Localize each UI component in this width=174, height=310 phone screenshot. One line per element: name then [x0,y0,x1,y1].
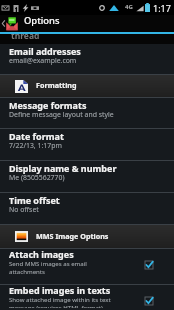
staticText: Email addresses [9,45,81,57]
staticText: Embed images in texts [9,284,111,296]
staticText: Display name & number [9,162,117,174]
staticText: 1:17 [153,2,171,14]
staticText: Define message layout and style [9,110,114,119]
staticText: Message formats [9,99,87,111]
button[interactable]: Navigate up [0,15,18,32]
button[interactable]: Display name & number [0,161,174,192]
button[interactable]: Attach images [0,249,174,284]
button[interactable]: Email addresses [0,44,174,74]
staticText: Me (8505562770) [9,173,65,182]
staticText: 4G [125,3,133,11]
staticText: Date format [9,130,64,142]
staticText: Show attached image within its text mess… [9,295,111,308]
staticText: No offset [9,205,39,214]
staticText: Time offset [9,194,60,206]
staticText: Send MMS images as email attachments [9,259,87,276]
staticText: Options [24,14,60,27]
button[interactable]: MMS Image Options [0,225,174,248]
button[interactable]: Time offset [0,193,174,224]
button[interactable]: Embed images in texts [0,285,174,310]
staticText: email@example.com [9,56,77,65]
button[interactable]: Message formats [0,98,174,128]
button[interactable]: Formatting [0,75,174,97]
staticText: MMS Image Options [36,231,109,241]
staticText: 7/22/13, 1:17pm [9,141,62,150]
staticText: Attach images [9,248,74,260]
button[interactable]: Date format [0,129,174,160]
staticText: Formatting [36,80,77,90]
staticText: thread [11,30,40,39]
